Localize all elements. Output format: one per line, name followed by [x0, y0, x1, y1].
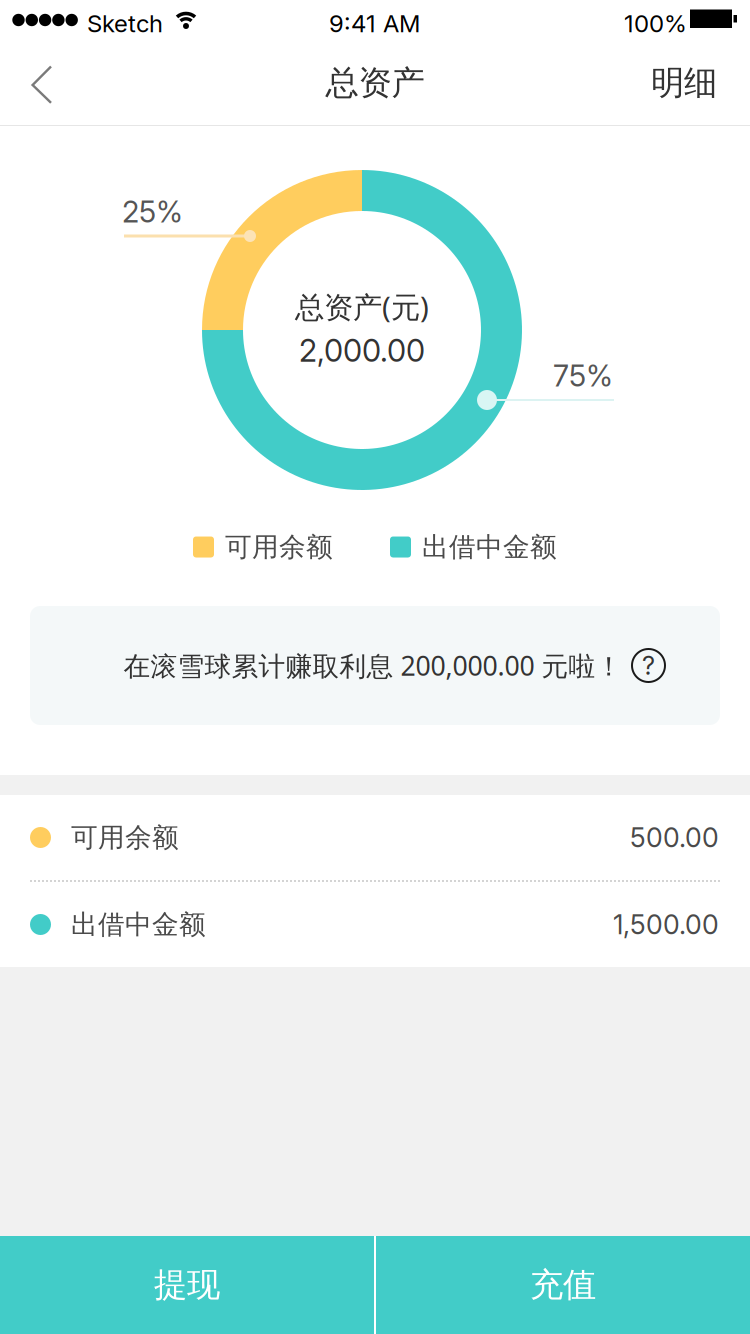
staticText: 100% — [624, 9, 687, 38]
staticText: 75% — [553, 358, 613, 393]
staticText: 可用余额 — [225, 531, 333, 563]
staticText: 1,500.00 — [613, 908, 719, 941]
staticText: 25% — [122, 194, 183, 229]
staticText: 提现 — [154, 1264, 220, 1305]
button[interactable]: 提现 — [0, 1236, 374, 1334]
staticText: 在滚雪球累计赚取利息 200,000.00 元啦！ — [123, 648, 622, 683]
staticText: 充值 — [530, 1264, 596, 1305]
button[interactable]: Help — [631, 648, 665, 682]
staticText: 明细 — [651, 62, 717, 103]
staticText: 500.00 — [630, 821, 719, 854]
staticText: 出借中金额 — [422, 531, 557, 563]
button[interactable]: 出借中金额 — [0, 882, 750, 967]
button[interactable]: 可用余额 — [0, 795, 750, 880]
staticText: 可用余额 — [71, 821, 179, 854]
staticText: ? — [642, 650, 655, 681]
staticText: 9:41 AM — [329, 9, 420, 38]
staticText: Sketch — [87, 9, 163, 38]
staticText: 总资产 — [325, 62, 424, 103]
button[interactable]: 充值 — [376, 1236, 750, 1334]
button[interactable]: 明细 — [635, 40, 733, 126]
staticText: 2,000.00 — [299, 332, 425, 369]
button[interactable]: Back — [0, 40, 80, 126]
staticText: 总资产(元) — [295, 287, 429, 326]
staticText: 出借中金额 — [71, 908, 206, 941]
